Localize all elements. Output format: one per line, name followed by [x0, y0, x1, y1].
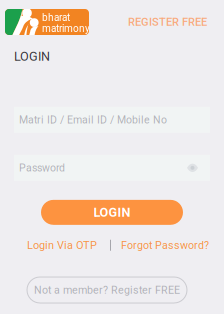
- staticText: matrimony: [42, 23, 90, 34]
- staticText: LOGIN: [93, 205, 130, 220]
- staticText: Forgot Password?: [121, 239, 209, 251]
- staticText: Login Via OTP: [27, 239, 97, 252]
- button[interactable]: Login Via OTP: [27, 236, 97, 255]
- staticText: bharat: [42, 12, 70, 23]
- staticText: REGISTER FREE: [128, 15, 207, 28]
- staticText: Matri ID / Email ID / Mobile No: [19, 114, 167, 126]
- button[interactable]: Not a member? Register FREE: [27, 277, 187, 303]
- staticText: Not a member? Register FREE: [34, 284, 180, 296]
- button[interactable]: REGISTER FREE: [126, 11, 209, 32]
- staticText: LOGIN: [14, 49, 50, 64]
- button[interactable]: Bharat Matrimony: [5, 9, 89, 35]
- button[interactable]: Forgot Password?: [121, 236, 209, 254]
- button[interactable]: LOGIN: [41, 200, 183, 225]
- staticText: Password: [19, 162, 65, 174]
